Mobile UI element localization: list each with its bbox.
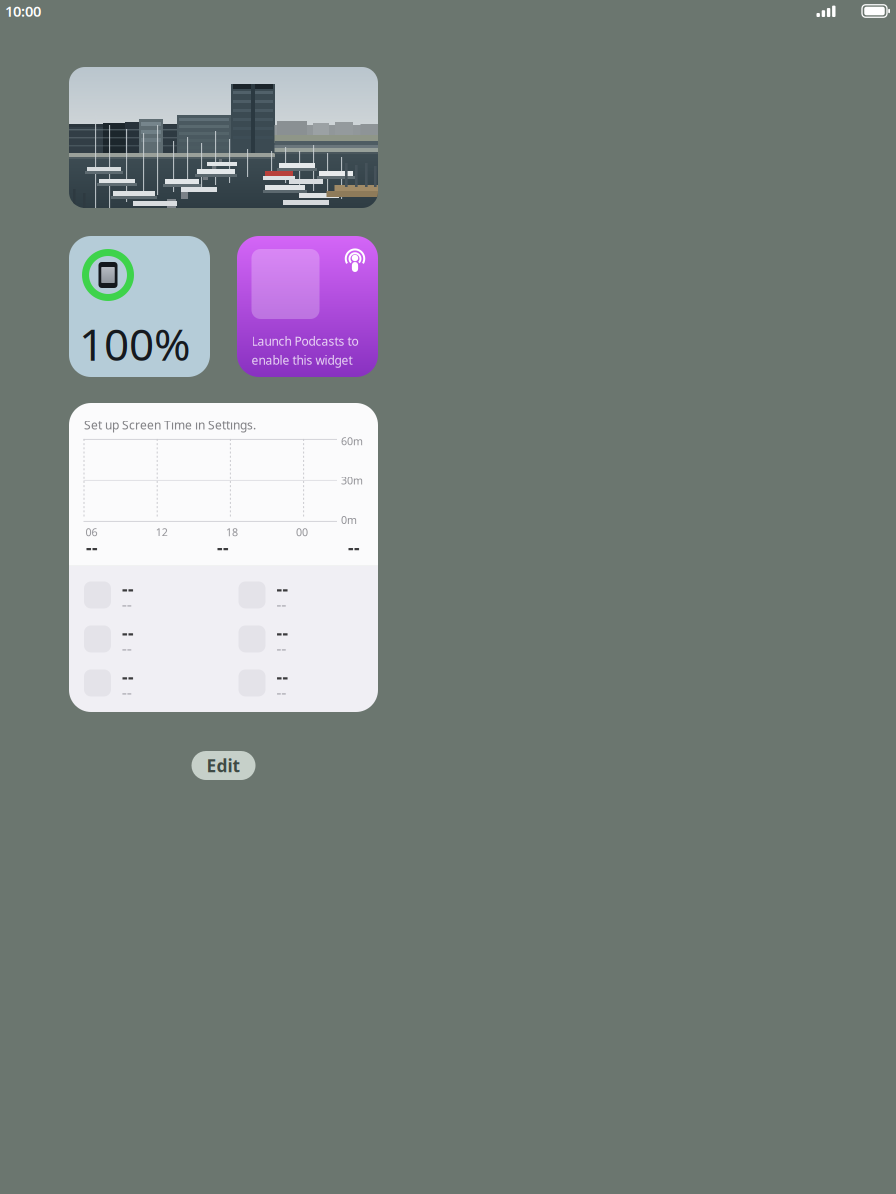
staticText: 100%	[79, 315, 191, 373]
staticText: 0m	[341, 513, 357, 527]
staticText: --	[217, 536, 229, 559]
staticText: --	[122, 682, 132, 702]
staticText: --	[122, 638, 132, 658]
staticText: --	[276, 621, 288, 644]
staticText: --	[276, 638, 286, 658]
button[interactable]: Podcasts widget	[237, 236, 378, 377]
button[interactable]: Edit	[191, 751, 255, 780]
staticText: 00	[296, 525, 308, 539]
staticText: enable this widget	[251, 352, 352, 368]
staticText: --	[122, 665, 134, 688]
staticText: --	[122, 621, 134, 644]
staticText: --	[276, 665, 288, 688]
staticText: 60m	[341, 434, 363, 448]
button[interactable]: Batteries widget, 100 percent	[69, 236, 210, 377]
staticText: 18	[226, 525, 238, 539]
staticText: Set up Screen Time in Settings.	[84, 417, 256, 433]
staticText: --	[86, 536, 98, 559]
staticText: Edit	[206, 754, 240, 777]
staticText: --	[348, 536, 360, 559]
staticText: 30m	[341, 473, 363, 488]
staticText: --	[276, 594, 286, 614]
staticText: 10:00	[5, 1, 41, 21]
staticText: --	[122, 594, 132, 614]
button[interactable]: Screen Time widget	[69, 403, 378, 712]
staticText: 12	[156, 525, 168, 539]
staticText: Launch Podcasts to	[251, 333, 358, 349]
staticText: --	[122, 577, 134, 600]
staticText: 06	[85, 525, 97, 539]
staticText: --	[276, 682, 286, 702]
staticText: --	[276, 577, 288, 600]
button[interactable]: Photos widget	[69, 67, 378, 208]
